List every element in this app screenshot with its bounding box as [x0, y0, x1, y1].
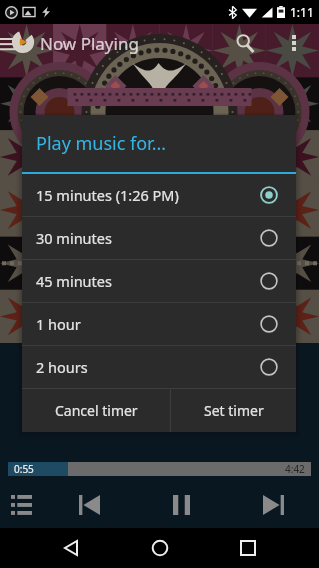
- staticText: 15 minutes (1:26 PM): [36, 185, 179, 205]
- button[interactable]: 15 minutes (1:26 PM): [22, 174, 296, 216]
- button[interactable]: Pause: [160, 484, 202, 526]
- button[interactable]: 2 hours: [22, 346, 296, 388]
- button[interactable]: Back: [51, 528, 91, 568]
- button[interactable]: Recent apps: [228, 528, 268, 568]
- button[interactable]: More options: [278, 24, 310, 62]
- staticText: 1 hour: [36, 314, 81, 334]
- staticText: 45 minutes: [36, 271, 112, 291]
- button[interactable]: Navigation drawer: [0, 24, 24, 62]
- staticText: 30 minutes: [36, 228, 112, 248]
- staticText: Now Playing: [40, 32, 139, 55]
- staticText: Play music for…: [36, 131, 166, 156]
- staticText: Cancel timer: [55, 401, 138, 420]
- button[interactable]: Previous track: [68, 484, 110, 526]
- staticText: 2 hours: [36, 357, 88, 377]
- button[interactable]: 45 minutes: [22, 260, 296, 302]
- button[interactable]: Set timer: [171, 389, 296, 432]
- button[interactable]: 1 hour: [22, 303, 296, 345]
- staticText: Set timer: [204, 401, 264, 420]
- button[interactable]: Next track: [252, 484, 294, 526]
- staticText: 0:55: [14, 462, 34, 476]
- button[interactable]: Queue: [0, 484, 42, 526]
- staticText: 1:11: [290, 4, 314, 20]
- button[interactable]: 30 minutes: [22, 217, 296, 259]
- button[interactable]: Cancel timer: [22, 389, 170, 432]
- button[interactable]: Home: [140, 528, 180, 568]
- staticText: 4:42: [285, 462, 305, 476]
- button[interactable]: Search: [225, 24, 265, 62]
